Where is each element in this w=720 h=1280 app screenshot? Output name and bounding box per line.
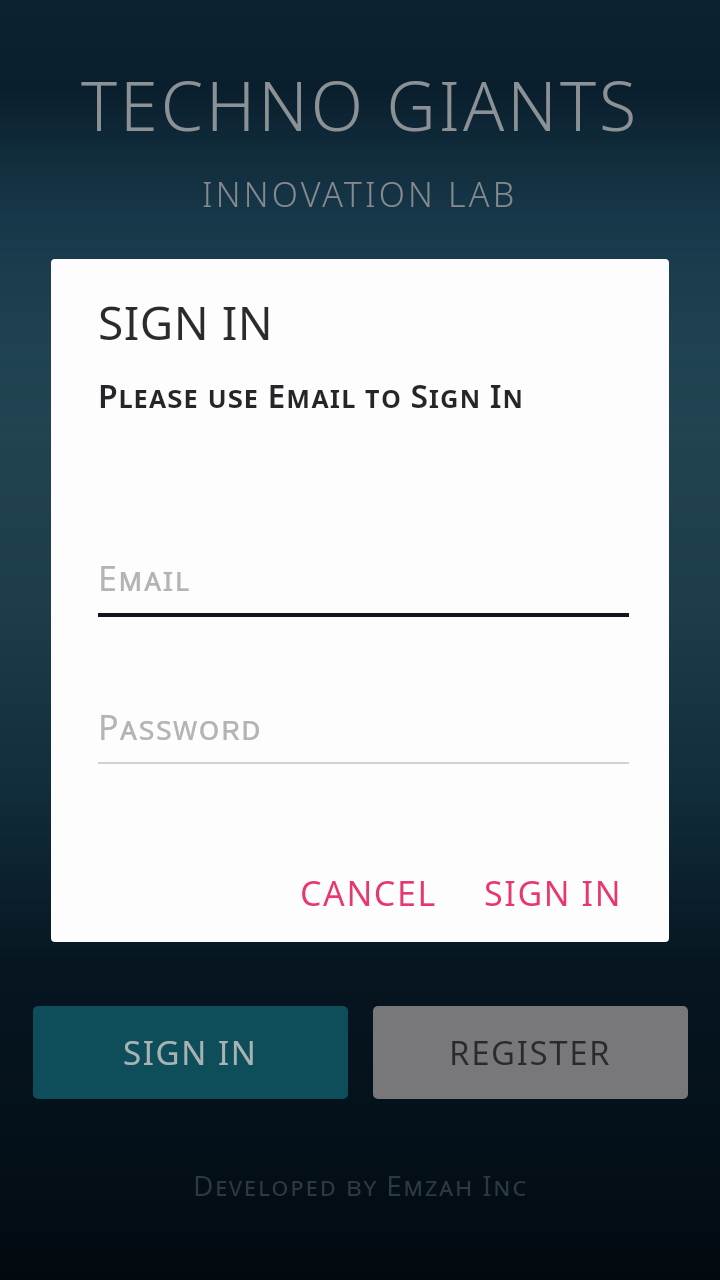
staticText: TECHNO GIANTS [81,58,640,151]
staticText: Dᴇᴠᴇʟᴏᴘᴇᴅ ʙʏ Eᴍᴢᴀʜ Iɴᴄ [193,1166,528,1204]
staticText: Eᴍᴀɪʟ [98,555,191,601]
staticText: CANCEL [300,870,437,916]
staticText: SIGN IN [98,291,274,354]
button[interactable]: Pᴀssᴡᴏʀᴅ [98,692,629,762]
button[interactable]: SIGN IN [478,862,629,924]
button[interactable]: SIGN IN [33,1006,348,1099]
staticText: SIGN IN [484,870,623,916]
staticText: REGISTER [449,1030,612,1075]
staticText: SIGN IN [123,1030,258,1075]
staticText: Pᴀssᴡᴏʀᴅ [98,704,263,750]
button[interactable]: REGISTER [373,1006,688,1099]
staticText: Pʟᴇᴀsᴇ ᴜsᴇ Eᴍᴀɪʟ ᴛᴏ Sɪɢɴ Iɴ [98,374,524,418]
button[interactable]: CANCEL [294,862,443,924]
staticText: INNOVATION LAB [202,171,518,217]
button[interactable]: Eᴍᴀɪʟ [98,543,629,613]
